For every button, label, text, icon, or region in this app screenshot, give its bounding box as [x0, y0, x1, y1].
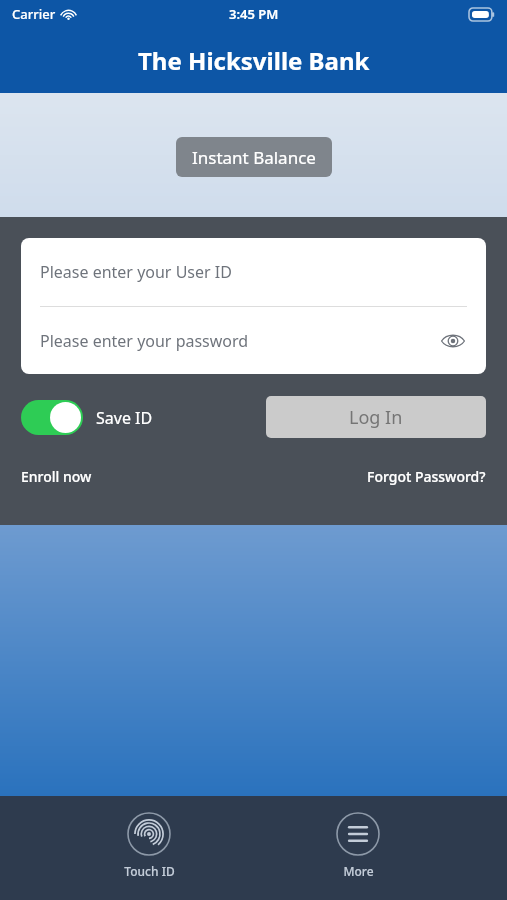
staticText: Please enter your password [40, 330, 249, 352]
other: More [336, 812, 380, 856]
button[interactable]: More [298, 808, 418, 883]
staticText: More [343, 863, 374, 879]
staticText: Enroll now [21, 467, 92, 486]
staticText: Instant Balance [192, 146, 316, 169]
staticText: Log In [349, 405, 403, 430]
staticText: The Hicksville Bank [138, 44, 370, 77]
staticText: Please enter your User ID [40, 261, 232, 283]
button[interactable]: Show password [438, 326, 468, 356]
staticText: Forgot Password? [367, 467, 486, 486]
button[interactable]: Log In [266, 396, 486, 438]
button[interactable]: Please enter your password [21, 307, 486, 374]
staticText: 3:45 PM [229, 5, 279, 23]
button[interactable]: Forgot Password? [367, 467, 486, 486]
button[interactable]: Touch ID [89, 808, 209, 883]
staticText: Touch ID [124, 863, 175, 879]
button[interactable]: Please enter your User ID [21, 238, 486, 306]
button[interactable]: Enroll now [21, 467, 92, 486]
button[interactable]: Instant Balance [176, 137, 332, 177]
staticText: Carrier [12, 5, 56, 23]
button[interactable]: Save ID [21, 400, 153, 435]
other: Touch ID [127, 812, 171, 856]
staticText: Save ID [96, 407, 153, 429]
